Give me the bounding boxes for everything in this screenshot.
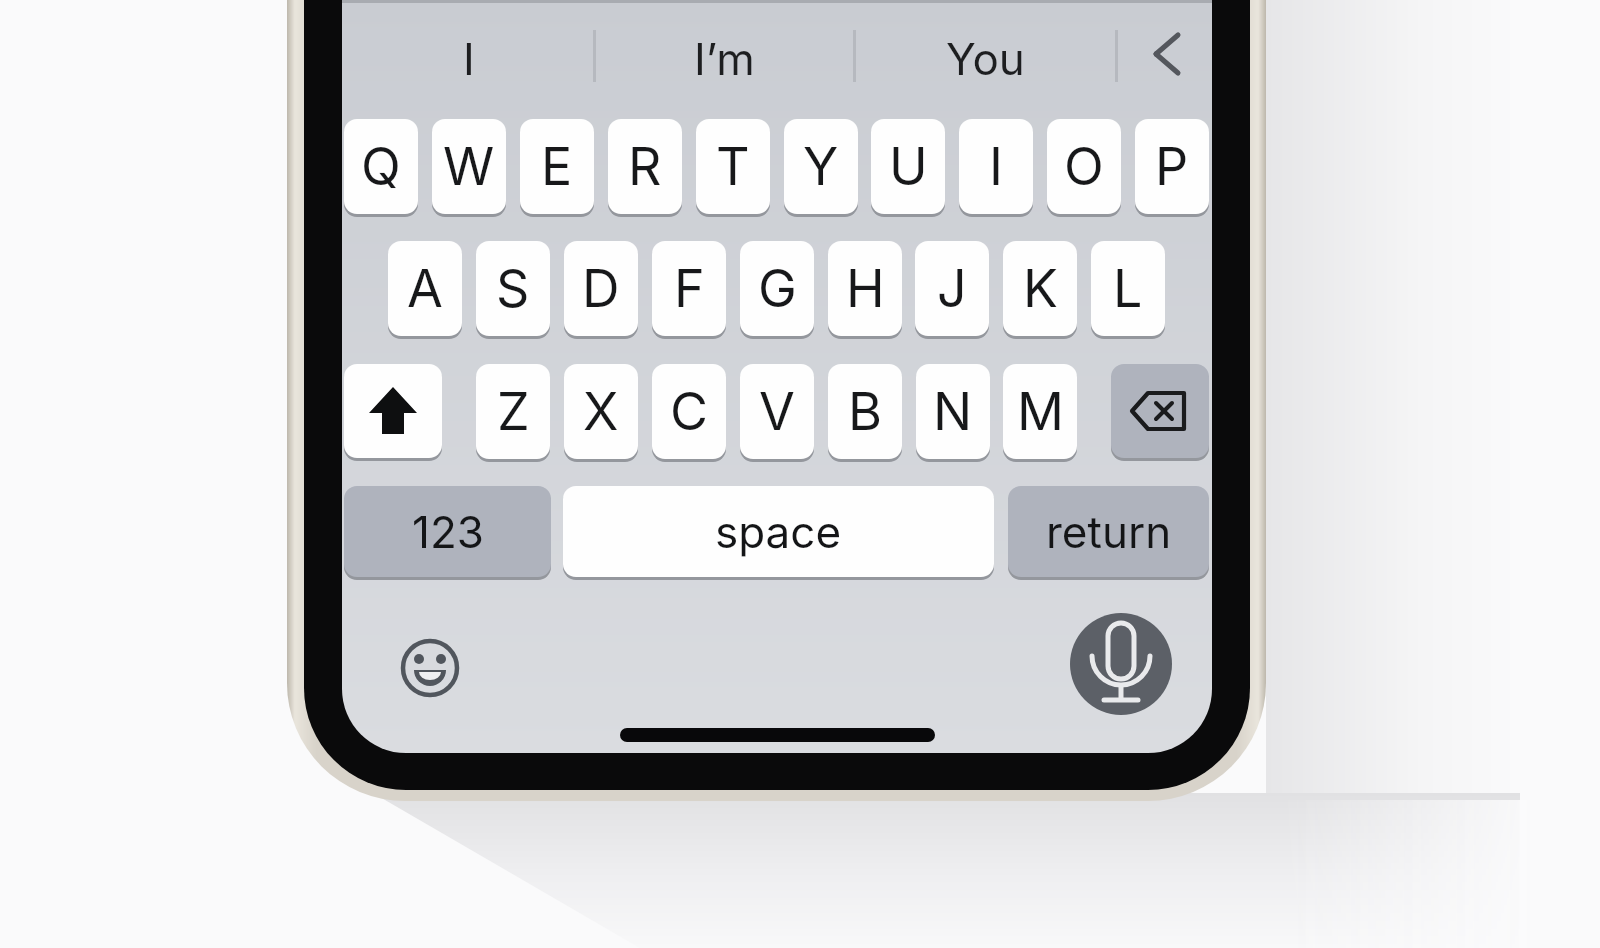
staticText: I xyxy=(463,32,475,85)
button[interactable]: D xyxy=(564,241,638,336)
button[interactable] xyxy=(1111,364,1209,458)
button[interactable]: E xyxy=(520,119,594,214)
staticText: X xyxy=(583,380,619,443)
staticText: U xyxy=(889,135,928,198)
button[interactable]: O xyxy=(1047,119,1121,214)
staticText: E xyxy=(541,135,573,198)
button[interactable]: J xyxy=(915,241,989,336)
staticText: S xyxy=(496,257,530,320)
button[interactable]: N xyxy=(916,364,990,459)
staticText: V xyxy=(759,380,795,443)
button[interactable]: S xyxy=(476,241,550,336)
staticText: A xyxy=(407,257,443,320)
staticText: G xyxy=(758,257,797,320)
staticText: I’m xyxy=(694,32,755,85)
button[interactable]: H xyxy=(828,241,902,336)
button[interactable]: X xyxy=(564,364,638,459)
staticText: Y xyxy=(803,135,839,198)
button[interactable]: P xyxy=(1135,119,1209,214)
button[interactable]: M xyxy=(1003,364,1077,459)
button[interactable]: U xyxy=(871,119,945,214)
button[interactable]: I’m xyxy=(594,10,854,106)
staticText: 123 xyxy=(412,505,484,558)
staticText: Q xyxy=(361,135,401,198)
button[interactable]: L xyxy=(1091,241,1165,336)
button[interactable]: G xyxy=(740,241,814,336)
button[interactable]: I xyxy=(344,10,594,106)
staticText: F xyxy=(674,257,705,320)
staticText: P xyxy=(1155,135,1189,198)
staticText: You xyxy=(946,32,1025,85)
button[interactable]: W xyxy=(432,119,506,214)
button[interactable]: T xyxy=(696,119,770,214)
button[interactable]: F xyxy=(652,241,726,336)
button[interactable]: return xyxy=(1008,486,1209,577)
staticText: return xyxy=(1046,505,1172,558)
button[interactable]: Q xyxy=(344,119,418,214)
staticText: L xyxy=(1113,257,1143,320)
button[interactable]: Y xyxy=(784,119,858,214)
staticText: B xyxy=(848,380,883,443)
button[interactable] xyxy=(344,364,442,458)
staticText: Z xyxy=(497,380,530,443)
button[interactable] xyxy=(1070,613,1172,715)
button[interactable]: B xyxy=(828,364,902,459)
staticText: W xyxy=(443,135,495,198)
staticText: K xyxy=(1023,257,1058,320)
staticText: C xyxy=(670,380,708,443)
button[interactable] xyxy=(390,628,470,708)
button[interactable]: V xyxy=(740,364,814,459)
button[interactable]: 123 xyxy=(344,486,551,577)
staticText: O xyxy=(1064,135,1104,198)
button[interactable]: Z xyxy=(476,364,550,459)
button[interactable]: I xyxy=(959,119,1033,214)
button[interactable]: You xyxy=(854,10,1116,106)
button[interactable]: space xyxy=(563,486,994,577)
staticText: M xyxy=(1017,380,1064,443)
button[interactable]: A xyxy=(388,241,462,336)
staticText: N xyxy=(933,380,973,443)
staticText: J xyxy=(937,257,967,320)
button[interactable]: R xyxy=(608,119,682,214)
button[interactable] xyxy=(1125,15,1210,100)
staticText: D xyxy=(582,257,620,320)
staticText: space xyxy=(715,505,842,558)
button[interactable]: C xyxy=(652,364,726,459)
button[interactable]: K xyxy=(1003,241,1077,336)
staticText: I xyxy=(989,135,1003,198)
staticText: R xyxy=(628,135,662,198)
staticText: H xyxy=(846,257,885,320)
staticText: T xyxy=(716,135,750,198)
